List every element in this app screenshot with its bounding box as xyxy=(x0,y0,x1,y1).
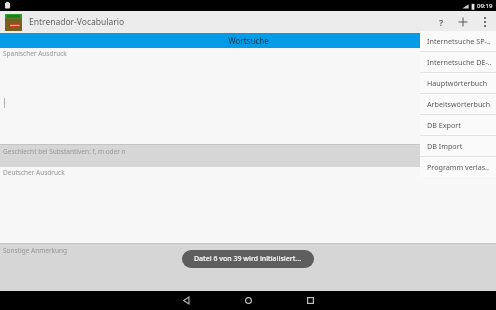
staticText: Deutscher Ausdruck xyxy=(3,168,65,177)
staticText: Internetsuche SP-.. xyxy=(427,36,491,46)
staticText: Sonstige Anmerkung xyxy=(3,246,68,255)
button[interactable]: Übersicht xyxy=(279,291,341,310)
staticText: Internetsuche DE-.. xyxy=(427,57,492,67)
staticText: Datei 6 von 39 wird initialisiert... xyxy=(194,254,302,264)
button[interactable]: DB Import xyxy=(420,136,496,156)
staticText: Entrenador-Vocabulario xyxy=(29,16,125,28)
staticText: Hauptwörterbuch xyxy=(427,78,488,88)
staticText: Spanischer Ausdruck xyxy=(3,49,67,58)
button[interactable]: Internetsuche DE-.. xyxy=(420,52,496,72)
button[interactable]: Wortsuche xyxy=(0,33,496,48)
button[interactable]: Zurück xyxy=(155,291,217,310)
staticText: ? xyxy=(439,16,444,28)
button[interactable]: Internetsuche SP-.. xyxy=(420,31,496,51)
button[interactable]: Startbildschirm xyxy=(217,291,279,310)
button[interactable]: Hinzufügen xyxy=(452,11,474,33)
staticText: Programm verlas.. xyxy=(427,162,489,172)
staticText: DB Import xyxy=(427,141,463,151)
button[interactable]: DB Export xyxy=(420,115,496,135)
button[interactable]: Hilfe xyxy=(430,11,452,33)
button[interactable]: Weitere Optionen xyxy=(474,11,496,33)
staticText: DB Export xyxy=(427,120,461,130)
button[interactable]: Programm verlas.. xyxy=(420,157,496,177)
staticText: 09:19 xyxy=(477,2,493,10)
staticText: Arbeitswörterbuch xyxy=(427,99,491,109)
button[interactable]: Arbeitswörterbuch xyxy=(420,94,496,114)
staticText: Wortsuche xyxy=(228,35,269,46)
staticText: Geschlecht bei Substantiven: f, m oder n xyxy=(3,147,126,156)
button[interactable]: Hauptwörterbuch xyxy=(420,73,496,93)
